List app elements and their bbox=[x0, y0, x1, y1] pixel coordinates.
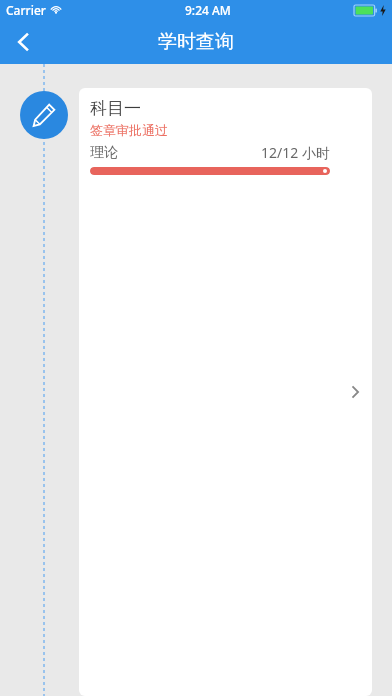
staticText: 学时查询 bbox=[158, 30, 234, 54]
staticText: 9:24 AM bbox=[185, 2, 231, 18]
staticText: 理论 bbox=[90, 144, 118, 162]
button[interactable]: 科目一 bbox=[20, 91, 68, 139]
staticText: 科目一 bbox=[90, 98, 141, 119]
button[interactable]: Back bbox=[0, 20, 48, 64]
staticText: Carrier bbox=[6, 2, 46, 18]
staticText: 12/12 小时 bbox=[261, 143, 330, 162]
staticText: 签章审批通过 bbox=[90, 122, 168, 138]
button[interactable]: 科目一 bbox=[79, 88, 372, 696]
